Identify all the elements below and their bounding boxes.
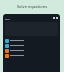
button[interactable]	[3, 38, 60, 43]
button[interactable]	[3, 43, 60, 48]
staticText: Solve equations	[0, 4, 64, 9]
staticText: 9:41	[5, 17, 10, 20]
button[interactable]	[3, 53, 60, 58]
button[interactable]	[3, 48, 60, 53]
